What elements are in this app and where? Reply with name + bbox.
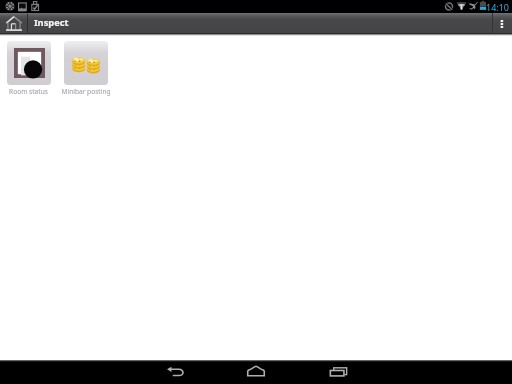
staticText: Minibar posting xyxy=(61,87,111,96)
button[interactable]: More options xyxy=(493,13,512,34)
staticText: Inspect xyxy=(34,16,69,29)
button[interactable]: Room status xyxy=(0,41,57,96)
button[interactable]: Back xyxy=(155,360,195,384)
button[interactable]: Recent apps xyxy=(318,360,358,384)
button[interactable]: Minibar posting xyxy=(57,41,114,96)
staticText: 14:10 xyxy=(486,1,510,13)
button[interactable]: Home xyxy=(0,13,27,34)
button[interactable]: Home xyxy=(236,360,276,384)
staticText: Room status xyxy=(9,87,48,96)
